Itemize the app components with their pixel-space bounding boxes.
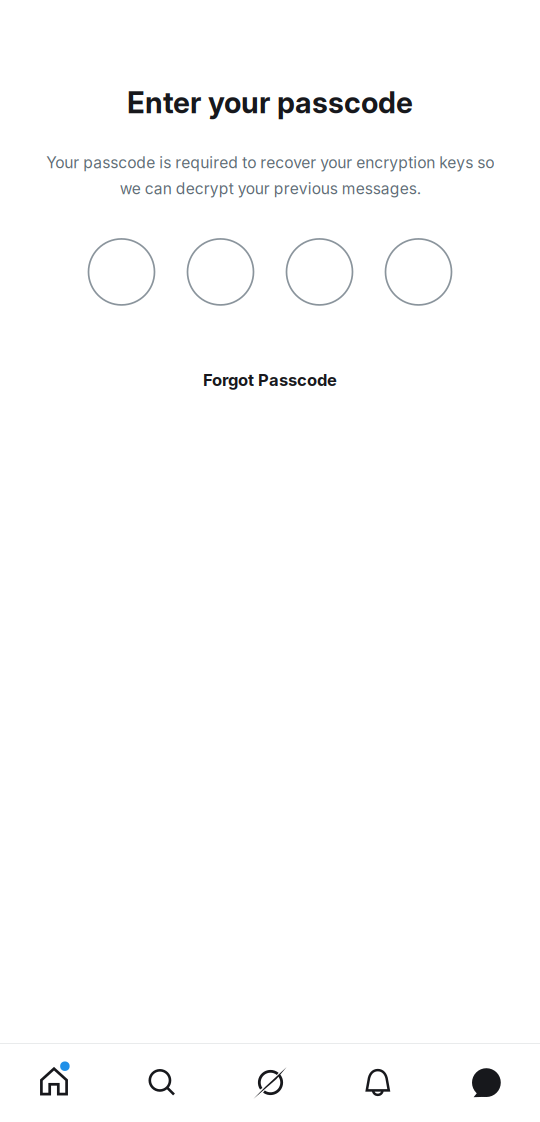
staticText: Forgot Passcode	[203, 370, 337, 390]
button[interactable]: Chats	[0, 1044, 108, 1122]
button[interactable]: Stories	[216, 1044, 324, 1122]
staticText: Enter your passcode	[127, 85, 413, 120]
button[interactable]: Messages	[432, 1044, 540, 1122]
button[interactable]: Forgot Passcode	[193, 360, 347, 400]
staticText: Your passcode is required to recover you…	[46, 153, 494, 198]
button[interactable]: Search	[108, 1043, 216, 1121]
button[interactable]: Calls	[324, 1043, 432, 1121]
